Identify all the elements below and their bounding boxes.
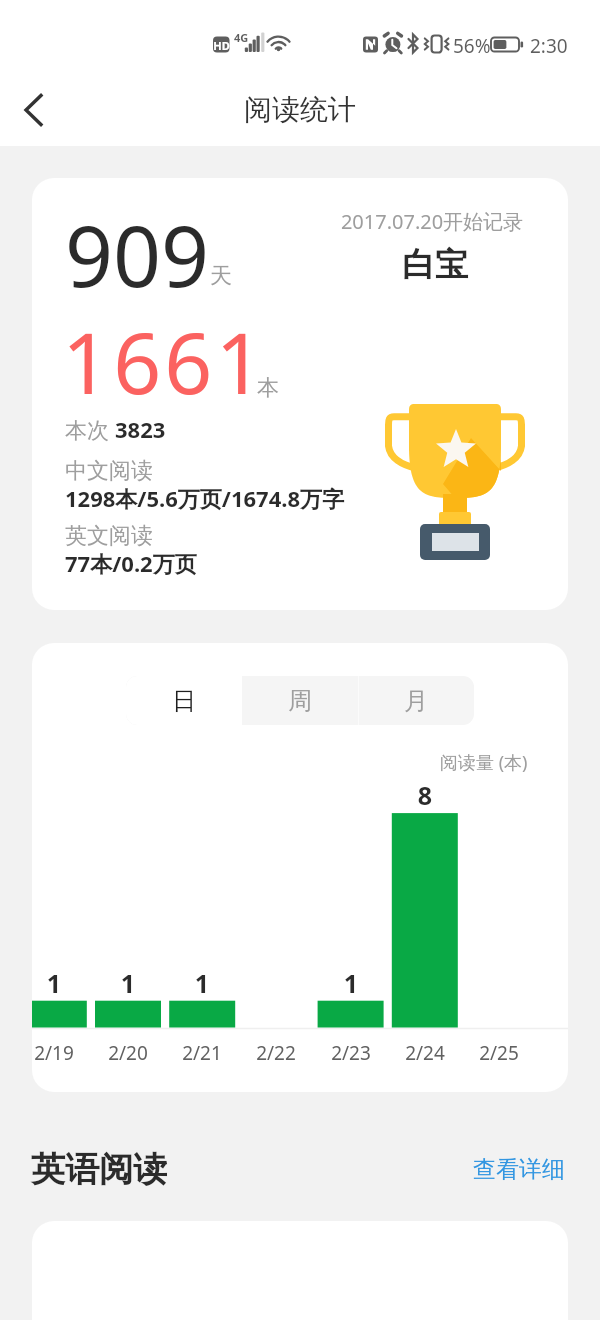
staticText: 英语阅读 [31,1148,167,1191]
button[interactable]: 月 [358,676,474,725]
staticText: 1298本/5.6万页/1674.8万字 [65,483,345,513]
staticText: 1 [98,966,158,1000]
staticText: 2/21 [162,1040,242,1066]
staticText: 77本/0.2万页 [65,548,197,578]
staticText: 2/23 [311,1040,391,1066]
staticText: 2/24 [385,1040,465,1066]
staticText: 2/25 [459,1040,539,1066]
staticText: 1 [172,966,232,1000]
staticText: 8 [395,778,455,812]
staticText: 2:30 [530,33,568,59]
staticText: 英文阅读 [65,522,153,550]
button[interactable]: Back [6,82,62,138]
staticText: 1661 [62,304,267,418]
staticText: 日 [172,686,196,716]
staticText: 白宝 [335,244,535,286]
button[interactable]: 日 [126,676,242,725]
button[interactable]: 2017.07.20开始记录 [32,178,568,610]
staticText: 909 [65,197,210,311]
button[interactable]: 周 [242,676,358,725]
staticText: 阅读量 (本) [440,750,528,775]
staticText: 阅读统计 [244,92,356,127]
staticText: 4G [234,30,249,45]
staticText: 2/19 [32,1040,94,1066]
staticText: 1 [32,966,84,1000]
staticText: 2/20 [88,1040,168,1066]
staticText: 2017.07.20开始记录 [292,208,568,235]
staticText: 1 [321,966,381,1000]
staticText: 2/22 [236,1040,316,1066]
staticText: 天 [210,262,232,290]
staticText: 本次 [65,414,115,444]
staticText: HD [213,38,230,53]
staticText: 月 [404,686,428,716]
button[interactable]: 查看详细 [459,1145,600,1193]
staticText: 56% [453,33,491,59]
staticText: 查看详细 [473,1155,565,1183]
staticText: 本 [257,374,279,402]
staticText: 3823 [115,414,166,444]
staticText: 中文阅读 [65,457,153,485]
staticText: 周 [288,686,312,716]
